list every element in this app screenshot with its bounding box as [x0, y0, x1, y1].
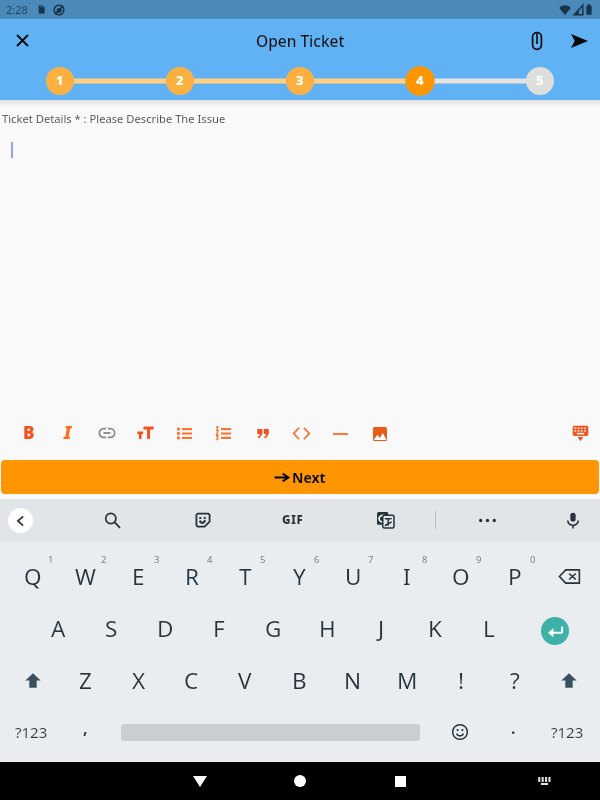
button[interactable]: Code	[282, 414, 321, 453]
button[interactable]: V	[218, 654, 272, 706]
button[interactable]: S	[85, 602, 138, 654]
button[interactable]: Insert image	[360, 414, 399, 453]
button[interactable]: F	[192, 602, 246, 654]
button[interactable]: J	[354, 602, 408, 654]
button[interactable]: Quote	[243, 414, 282, 453]
button[interactable]: ?	[488, 654, 542, 706]
button[interactable]: Back	[170, 762, 230, 800]
button[interactable]: R	[165, 550, 218, 602]
button[interactable]: Bold	[9, 414, 48, 453]
button[interactable]: Enter	[516, 602, 596, 654]
button[interactable]: M	[380, 654, 434, 706]
button[interactable]: .	[495, 706, 531, 758]
staticText: 6	[314, 553, 320, 566]
button[interactable]: B	[272, 654, 326, 706]
button[interactable]: Home	[270, 762, 330, 800]
button[interactable]: Bulleted list	[165, 414, 204, 453]
staticText: Open Ticket	[256, 30, 345, 51]
staticText: Q	[24, 561, 42, 592]
button[interactable]: D	[138, 602, 192, 654]
button[interactable]: C	[165, 654, 218, 706]
button[interactable]: Z	[59, 654, 112, 706]
staticText: 8	[422, 553, 428, 566]
staticText: 4	[207, 553, 213, 566]
button[interactable]: 3	[240, 62, 360, 100]
button[interactable]: G	[246, 602, 300, 654]
staticText: 1	[56, 71, 64, 89]
button[interactable]: Previous	[8, 508, 33, 533]
button[interactable]: X	[112, 654, 165, 706]
staticText: L	[483, 613, 495, 644]
button[interactable]: Emoji	[442, 706, 478, 758]
button[interactable]: U	[326, 550, 380, 602]
staticText: B	[23, 421, 35, 444]
button[interactable]: ,	[67, 706, 103, 758]
staticText: M	[397, 665, 418, 696]
button[interactable]: H	[300, 602, 354, 654]
staticText: .	[511, 717, 516, 739]
button[interactable]: Attach file	[516, 20, 558, 62]
button[interactable]: Stickers	[185, 502, 221, 538]
button[interactable]: ?123	[9, 706, 53, 758]
staticText: C	[184, 665, 199, 696]
button[interactable]: Translate	[367, 502, 403, 538]
staticText: H	[319, 613, 336, 644]
button[interactable]: ?123	[545, 706, 589, 758]
staticText: R	[185, 561, 199, 592]
staticText: J	[378, 613, 385, 644]
button[interactable]: Space	[113, 706, 428, 758]
staticText: K	[428, 613, 442, 644]
button[interactable]: A	[32, 602, 85, 654]
button[interactable]: L	[462, 602, 516, 654]
button[interactable]: Recents	[370, 762, 430, 800]
button[interactable]: O	[434, 550, 488, 602]
staticText: I	[64, 421, 72, 444]
button[interactable]: More options	[469, 502, 505, 538]
button[interactable]: P	[488, 550, 542, 602]
button[interactable]: Shift	[6, 654, 59, 706]
button[interactable]: T	[218, 550, 272, 602]
staticText: 1	[48, 553, 54, 566]
button[interactable]: Q	[6, 550, 59, 602]
staticText: B	[292, 665, 307, 696]
button[interactable]: I	[380, 550, 434, 602]
button[interactable]: Voice input	[555, 502, 591, 538]
button[interactable]: 1	[0, 62, 120, 100]
button[interactable]: Text size	[126, 414, 165, 453]
button[interactable]: Numbered list	[204, 414, 243, 453]
staticText: 7	[368, 553, 374, 566]
button[interactable]: Divider	[321, 414, 360, 453]
button[interactable]: GIF	[275, 502, 311, 538]
button[interactable]: Backspace	[542, 550, 596, 602]
staticText: 5	[536, 71, 544, 89]
button[interactable]: Shift	[542, 654, 596, 706]
staticText: !	[458, 665, 465, 696]
staticText: P	[508, 561, 522, 592]
button[interactable]: Italic	[48, 414, 87, 453]
staticText: Z	[79, 665, 92, 696]
staticText: F	[213, 613, 225, 644]
button[interactable]: 5	[480, 62, 600, 100]
staticText: 2:28	[6, 2, 28, 17]
staticText: Ticket Details * : Please Describe The I…	[2, 111, 226, 126]
staticText: A	[51, 613, 66, 644]
button[interactable]: Link	[87, 414, 126, 453]
button[interactable]: Send	[558, 20, 600, 62]
staticText: T	[239, 561, 252, 592]
button[interactable]: Next	[1, 460, 599, 494]
button[interactable]: Switch keyboard	[530, 767, 558, 795]
button[interactable]: 2	[120, 62, 240, 100]
button[interactable]: Y	[272, 550, 326, 602]
button[interactable]: K	[408, 602, 462, 654]
button[interactable]: 4	[360, 62, 480, 100]
staticText: S	[105, 613, 118, 644]
button[interactable]: E	[112, 550, 165, 602]
button[interactable]: N	[326, 654, 380, 706]
button[interactable]: Hide keyboard	[565, 418, 595, 448]
staticText: D	[157, 613, 174, 644]
button[interactable]: W	[59, 550, 112, 602]
button[interactable]: Close	[0, 19, 44, 62]
button[interactable]: !	[434, 654, 488, 706]
button[interactable]: Search	[94, 502, 130, 538]
staticText: 4	[416, 71, 424, 89]
